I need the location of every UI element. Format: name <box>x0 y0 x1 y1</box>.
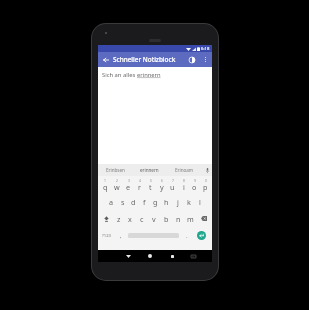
staticText: u <box>170 182 175 192</box>
button[interactable]: 3 <box>123 176 134 193</box>
button[interactable]: v <box>148 210 160 227</box>
staticText: 3 <box>128 178 130 183</box>
button[interactable]: Period <box>181 227 192 244</box>
button[interactable]: Enter <box>192 227 211 244</box>
staticText: y <box>160 182 164 192</box>
button[interactable]: b <box>160 210 172 227</box>
staticText: 7 <box>172 178 174 183</box>
button[interactable]: d <box>128 193 139 210</box>
staticText: l <box>199 197 201 207</box>
staticText: z <box>117 214 121 224</box>
staticText: 0 <box>205 178 207 183</box>
staticText: v <box>152 214 156 224</box>
button[interactable]: Hide keyboard <box>117 250 139 262</box>
button[interactable]: Erinoam <box>167 164 202 176</box>
button[interactable]: a <box>106 193 117 210</box>
button[interactable]: n <box>172 210 184 227</box>
staticText: Erinoam <box>175 167 194 173</box>
staticText: r <box>138 182 141 192</box>
button[interactable]: 7 <box>167 176 178 193</box>
button[interactable]: g <box>150 193 161 210</box>
button[interactable]: Comma <box>115 227 126 244</box>
button[interactable]: Recents <box>161 250 183 262</box>
button[interactable]: 4 <box>134 176 145 193</box>
staticText: k <box>187 197 191 207</box>
staticText: b <box>164 214 169 224</box>
staticText: 2 <box>116 178 118 183</box>
button[interactable]: Home <box>139 250 161 262</box>
button[interactable]: Toggle theme <box>184 52 199 67</box>
button[interactable]: s <box>117 193 128 210</box>
staticText: 5 <box>150 178 152 183</box>
button[interactable]: c <box>136 210 148 227</box>
staticText: 4 <box>139 178 141 183</box>
staticText: q <box>103 182 108 192</box>
staticText: erinnern <box>140 167 159 173</box>
staticText: p <box>203 182 208 192</box>
button[interactable]: ?123 <box>99 227 115 244</box>
staticText: Sich an alles <box>102 71 137 79</box>
staticText: Schneller Notizblock <box>113 55 176 64</box>
button[interactable]: m <box>184 210 196 227</box>
staticText: 1 <box>104 178 106 183</box>
button[interactable]: Backspace <box>196 210 211 227</box>
staticText: 6:18 <box>201 46 210 52</box>
button[interactable]: erinnern <box>132 164 167 176</box>
staticText: . <box>186 232 188 240</box>
staticText: , <box>120 232 122 240</box>
button[interactable]: Back <box>98 52 113 67</box>
button[interactable]: Erinbsen <box>98 164 132 176</box>
button[interactable]: 0 <box>200 176 211 193</box>
staticText: w <box>114 182 120 192</box>
staticText: e <box>126 182 131 192</box>
staticText: i <box>183 182 185 192</box>
staticText: a <box>109 197 114 207</box>
button[interactable]: 5 <box>145 176 156 193</box>
button[interactable]: x <box>124 210 136 227</box>
staticText: 9 <box>194 178 196 183</box>
button[interactable]: k <box>183 193 194 210</box>
button[interactable]: Voice input <box>202 164 212 176</box>
button[interactable]: 8 <box>178 176 189 193</box>
staticText: 6 <box>161 178 163 183</box>
staticText: x <box>128 214 132 224</box>
button[interactable]: 9 <box>189 176 200 193</box>
staticText: Erinbsen <box>106 167 125 173</box>
staticText: c <box>140 214 144 224</box>
staticText: 8 <box>183 178 185 183</box>
button[interactable]: z <box>113 210 124 227</box>
button[interactable]: 1 <box>99 176 111 193</box>
staticText: d <box>131 197 136 207</box>
button[interactable]: Sich an alles <box>98 67 212 164</box>
button[interactable]: 6 <box>156 176 167 193</box>
staticText: g <box>153 197 158 207</box>
staticText: f <box>143 197 146 207</box>
button[interactable]: Switch keyboard <box>183 250 203 262</box>
staticText: s <box>121 197 125 207</box>
button[interactable]: f <box>139 193 150 210</box>
button[interactable]: l <box>194 193 205 210</box>
staticText: erinnern <box>137 71 161 79</box>
staticText: t <box>149 182 152 192</box>
button[interactable]: 2 <box>111 176 123 193</box>
button[interactable]: More options <box>199 53 212 66</box>
staticText: ?123 <box>102 233 112 239</box>
staticText: n <box>176 214 181 224</box>
button[interactable]: j <box>172 193 183 210</box>
button[interactable]: h <box>161 193 172 210</box>
button[interactable]: Space <box>126 227 181 244</box>
button[interactable]: Shift <box>99 210 113 227</box>
staticText: o <box>192 182 197 192</box>
staticText: h <box>164 197 169 207</box>
staticText: m <box>187 214 194 224</box>
staticText: j <box>177 197 179 207</box>
